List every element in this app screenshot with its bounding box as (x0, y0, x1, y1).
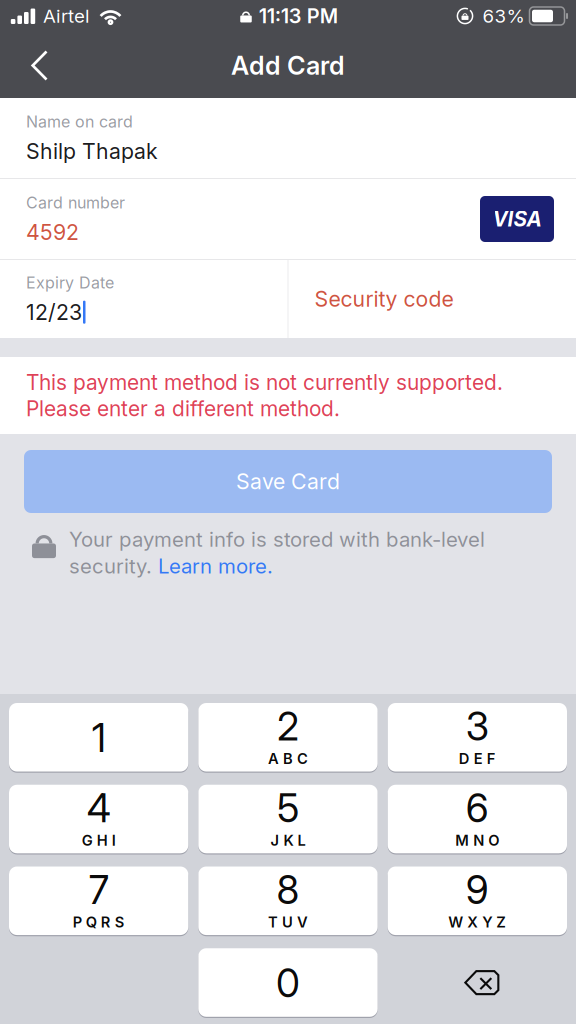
staticText: Card number (26, 193, 125, 212)
staticText: 9 (466, 867, 489, 913)
staticText: 3 (466, 703, 489, 750)
staticText: 7 (89, 867, 109, 913)
staticText: Save Card (236, 469, 340, 494)
button[interactable]: Delete (388, 948, 567, 1018)
button[interactable]: Save Card (24, 450, 552, 513)
button[interactable]: 3 (388, 703, 567, 773)
staticText: 0 (276, 960, 300, 1006)
staticText: Learn more. (158, 554, 273, 578)
staticText: J K L (270, 832, 305, 849)
staticText: security. (69, 554, 158, 578)
staticText: M N O (455, 832, 499, 849)
staticText: Please enter a different method. (26, 396, 340, 421)
staticText: P Q R S (73, 913, 125, 931)
staticText: Shilp Thapak (26, 138, 158, 164)
staticText: Airtel (43, 5, 90, 27)
staticText: 8 (276, 867, 299, 913)
staticText: Security code (314, 286, 453, 312)
button[interactable]: 5 (198, 785, 378, 855)
staticText: 1 (92, 714, 106, 761)
staticText: G H I (82, 832, 116, 849)
staticText: A B C (268, 750, 308, 768)
button[interactable]: 7 (9, 866, 188, 936)
staticText: 4592 (26, 219, 79, 245)
staticText: 6 (466, 785, 489, 832)
staticText: T U V (268, 913, 308, 931)
staticText: 4 (87, 785, 111, 832)
button[interactable]: 6 (388, 785, 567, 855)
button[interactable]: 1 (9, 703, 188, 773)
staticText: 63% (482, 5, 524, 27)
button[interactable]: 2 (198, 703, 378, 773)
staticText: D E F (459, 750, 496, 768)
button[interactable]: Back (14, 39, 66, 91)
button[interactable]: 0 (198, 948, 378, 1018)
staticText: 5 (277, 785, 299, 832)
staticText: Your payment info is stored with bank-le… (69, 527, 485, 552)
staticText: 2 (277, 703, 299, 750)
staticText: Expiry Date (26, 273, 114, 292)
staticText: Add Card (231, 50, 345, 81)
button[interactable]: 8 (198, 866, 378, 936)
button[interactable]: Learn more. (158, 554, 273, 578)
button[interactable]: 4 (9, 785, 188, 855)
staticText: Name on card (26, 112, 133, 131)
staticText: This payment method is not currently sup… (26, 370, 503, 395)
staticText: 11:13 PM (259, 4, 338, 28)
button[interactable]: 9 (388, 866, 567, 936)
staticText: 12/23 (26, 299, 82, 325)
staticText: VISA (492, 206, 541, 231)
staticText: W X Y Z (448, 913, 506, 931)
